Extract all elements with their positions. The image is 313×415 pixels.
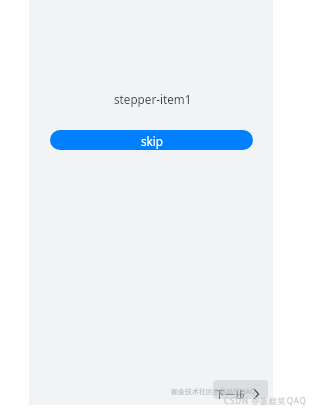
button[interactable]: 下一步 xyxy=(213,380,268,399)
staticText: CSDN @蒸糕笑QAQ xyxy=(224,395,307,406)
staticText: skip xyxy=(141,133,164,149)
button[interactable]: skip xyxy=(50,130,253,150)
other: Next step xyxy=(253,389,260,399)
staticText: stepper-item1 xyxy=(114,91,192,107)
staticText: 下一步 xyxy=(215,388,245,399)
staticText: 掘金技术社区@蒸糕笑QAQ xyxy=(171,387,256,397)
